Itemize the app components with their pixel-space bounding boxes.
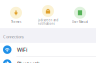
button[interactable]: Bluetooth [0, 57, 96, 63]
button[interactable]: User Manual [64, 2, 96, 26]
staticText: WiFi [17, 46, 27, 53]
staticText: Lock screen and notifications [37, 18, 58, 26]
staticText: Connections [3, 34, 24, 39]
staticText: Bluetooth [17, 60, 40, 63]
button[interactable]: WiFi [0, 43, 96, 57]
button[interactable]: Themes [0, 2, 32, 26]
button[interactable]: Lock screen and notifications [32, 0, 64, 28]
staticText: Themes [11, 20, 21, 24]
staticText: User Manual [72, 20, 88, 24]
